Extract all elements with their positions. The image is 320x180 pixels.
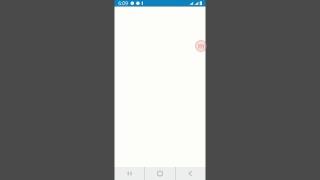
button[interactable]: Back bbox=[175, 167, 205, 180]
staticText: m bbox=[198, 42, 204, 50]
staticText: 6:09 bbox=[118, 0, 128, 7]
button[interactable]: Recents bbox=[114, 167, 145, 180]
button[interactable]: Home bbox=[145, 167, 175, 180]
